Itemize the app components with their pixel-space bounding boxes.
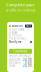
- staticText: Total: [9, 64, 15, 67]
- staticText: profile to continue: [5, 7, 35, 13]
- staticText: Notify me: [9, 40, 22, 44]
- staticText: Email: [12, 31, 18, 34]
- staticText: Edit: [26, 24, 31, 28]
- staticText: 24.90: [23, 58, 32, 61]
- staticText: 24.90: [23, 64, 32, 67]
- staticText: Secure checkout: [9, 54, 31, 57]
- staticText: Preferences: [9, 37, 26, 40]
- staticText: Complete your: [6, 2, 35, 7]
- staticText: Phone: [12, 34, 22, 37]
- button[interactable]: Edit: [25, 24, 32, 27]
- staticText: Continue: [13, 49, 27, 53]
- staticText: Full name: [12, 28, 25, 31]
- staticText: Delivery: [9, 61, 20, 64]
- button[interactable]: Continue: [9, 49, 32, 54]
- staticText: Account: [12, 24, 23, 28]
- staticText: Subtotal: [9, 58, 20, 61]
- staticText: 0.00: [25, 61, 32, 64]
